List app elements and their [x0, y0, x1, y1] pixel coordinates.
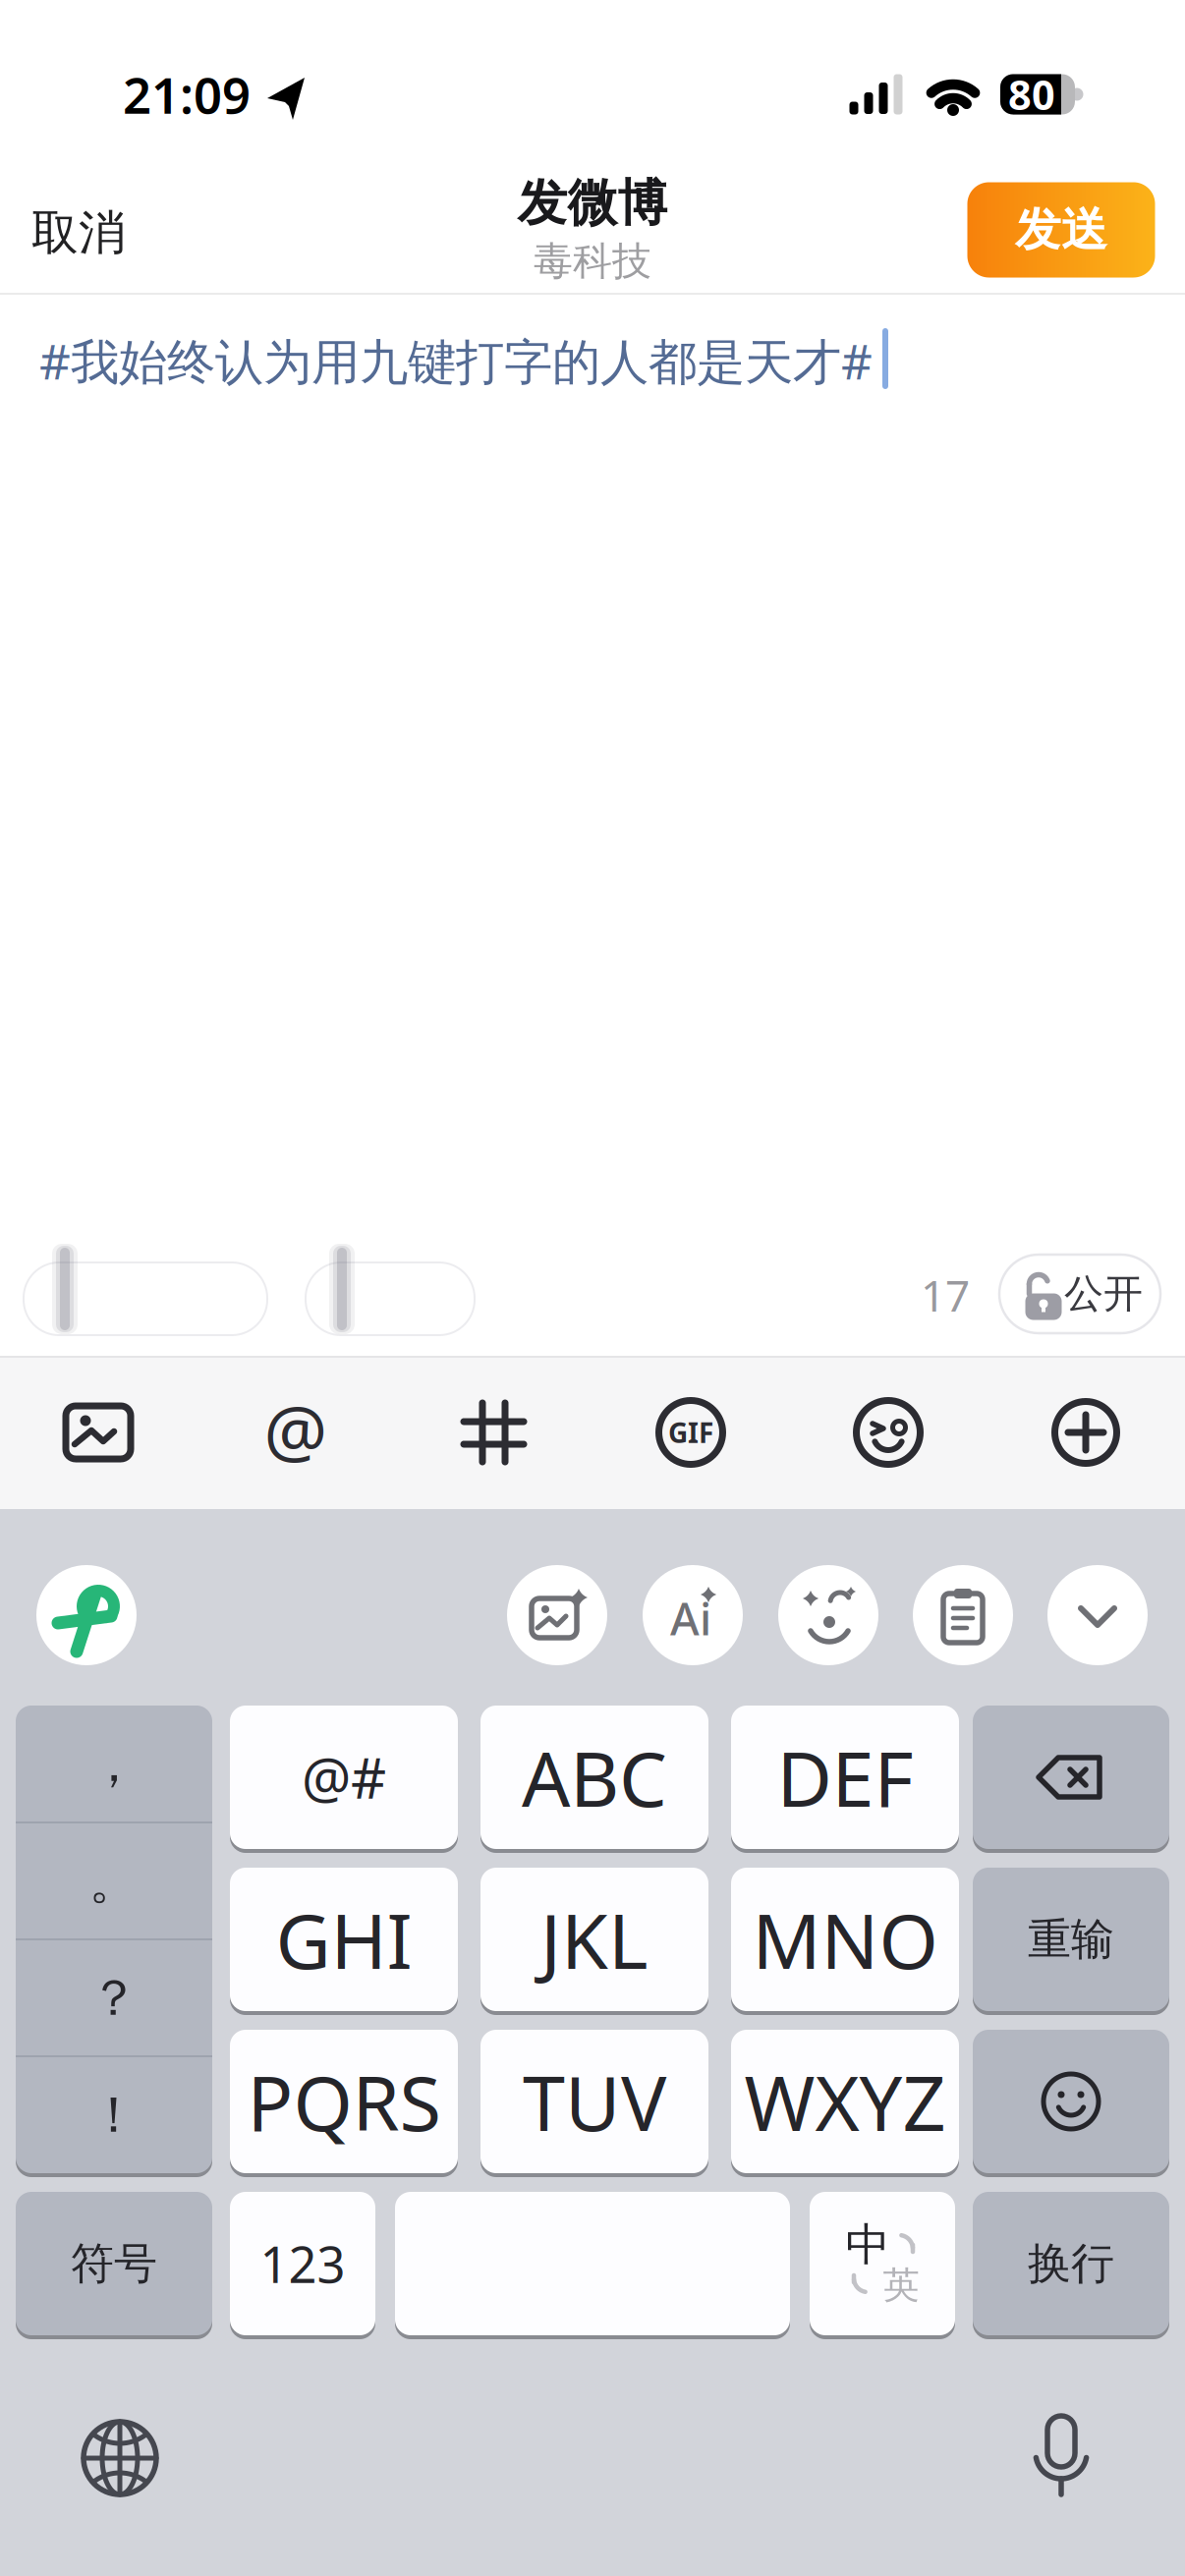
staticText: 英 [883, 2263, 919, 2308]
button[interactable]: 斗图 [778, 1565, 878, 1665]
staticText: GIF [668, 1414, 713, 1451]
button[interactable]: 图片工具 [507, 1565, 607, 1665]
button[interactable]: 切换输入法 [76, 2414, 164, 2502]
staticText: 。 [89, 1851, 139, 1912]
staticText: 重输 [1028, 1913, 1114, 1966]
staticText: 中 [846, 2218, 890, 2272]
button[interactable]: 重输 [973, 1867, 1169, 2014]
button[interactable]: 发送 [967, 182, 1155, 278]
staticText: ABC [522, 1727, 667, 1828]
button[interactable]: 符号 [16, 2191, 212, 2338]
button[interactable]: 空格 [395, 2191, 790, 2338]
button[interactable]: 更多 [1037, 1383, 1135, 1482]
button[interactable]: 推荐话题 [24, 1262, 267, 1335]
button[interactable]: AI 助写 [643, 1565, 743, 1665]
button[interactable]: JKL [480, 1867, 708, 2014]
staticText: JKL [540, 1889, 649, 1990]
staticText: 取消 [31, 204, 126, 262]
button[interactable]: 表情 [839, 1383, 937, 1482]
button[interactable]: WXYZ [731, 2029, 959, 2176]
staticText: #我始终认为用九键打字的人都是天才# [39, 328, 873, 393]
button[interactable]: 话题 [444, 1383, 542, 1482]
staticText: 123 [260, 2231, 345, 2297]
staticText: WXYZ [744, 2051, 946, 2152]
staticText: @ [264, 1383, 328, 1476]
staticText: 17 [921, 1266, 970, 1324]
button[interactable]: 输入法菜单 [36, 1565, 137, 1665]
button[interactable]: DEF [731, 1705, 959, 1852]
staticText: 公开 [1064, 1270, 1143, 1318]
button[interactable]: 照片 [49, 1383, 147, 1482]
staticText: Ai [670, 1589, 711, 1648]
staticText: @# [302, 1741, 386, 1814]
button[interactable]: 公开 [999, 1255, 1160, 1333]
button[interactable]: @# [230, 1705, 458, 1852]
staticText: ， [89, 1734, 139, 1795]
staticText: 毒科技 [534, 237, 651, 285]
staticText: 符号 [71, 2237, 157, 2290]
button[interactable]: 剪贴板 [913, 1565, 1013, 1665]
button[interactable]: 删除 [973, 1705, 1169, 1852]
staticText: 发送 [1015, 202, 1107, 258]
button[interactable]: 换行 [973, 2191, 1169, 2338]
button[interactable]: GHI [230, 1867, 458, 2014]
button[interactable]: 听写 [1017, 2412, 1105, 2500]
button[interactable]: 提到 [247, 1383, 345, 1482]
staticText: 发微博 [517, 173, 668, 234]
staticText: 80 [1008, 67, 1055, 121]
button[interactable]: PQRS [230, 2029, 458, 2176]
button[interactable]: 123 [230, 2191, 375, 2338]
button[interactable]: 收起键盘 [1047, 1565, 1148, 1665]
button[interactable]: GIF [642, 1383, 740, 1482]
staticText: 换行 [1028, 2237, 1114, 2290]
staticText: MNO [752, 1889, 938, 1990]
button[interactable]: TUV [480, 2029, 708, 2176]
button[interactable]: 中英切换 [810, 2191, 955, 2338]
button[interactable]: 标点 [16, 1705, 212, 2176]
button[interactable]: ABC [480, 1705, 708, 1852]
staticText: PQRS [247, 2051, 441, 2152]
button[interactable]: MNO [731, 1867, 959, 2014]
staticText: GHI [276, 1889, 412, 1990]
button[interactable]: 表情 [973, 2029, 1169, 2176]
staticText: DEF [777, 1727, 913, 1828]
staticText: 21:09 [123, 61, 251, 127]
staticText: ？ [89, 1968, 139, 2029]
staticText: ！ [89, 2085, 139, 2146]
button[interactable]: 取消 [10, 189, 147, 277]
staticText: TUV [523, 2051, 666, 2152]
button[interactable]: 推荐话题 [306, 1262, 475, 1335]
